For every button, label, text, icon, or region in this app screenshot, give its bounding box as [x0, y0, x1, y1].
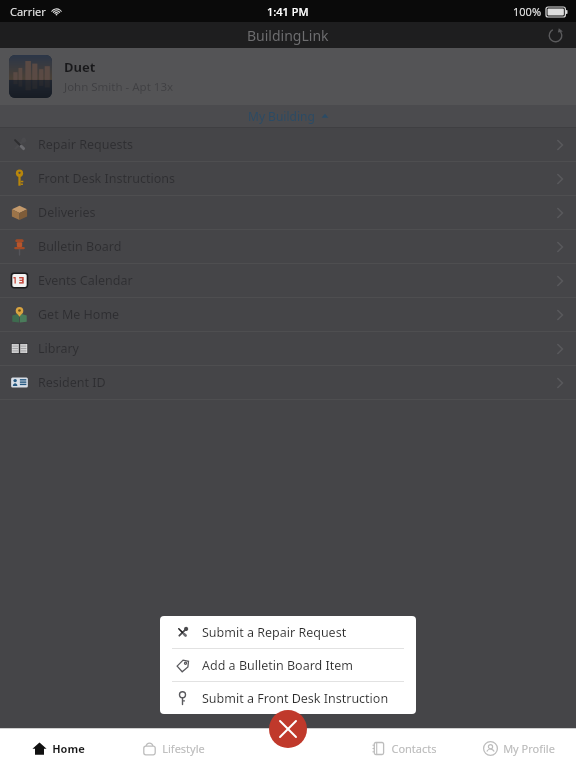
- button[interactable]: Lifestyle: [116, 729, 231, 768]
- staticText: Repair Requests: [38, 136, 554, 153]
- button[interactable]: My Profile: [461, 729, 576, 768]
- staticText: Lifestyle: [162, 741, 205, 756]
- button[interactable]: Duet: [0, 48, 576, 105]
- staticText: 1:41 PM: [267, 4, 309, 19]
- button[interactable]: Refresh: [544, 24, 566, 46]
- button[interactable]: Home: [0, 729, 116, 768]
- button[interactable]: My Building: [0, 105, 576, 127]
- staticText: 100%: [513, 4, 542, 19]
- button[interactable]: Close menu: [269, 710, 307, 748]
- staticText: Contacts: [391, 741, 437, 756]
- staticText: Front Desk Instructions: [38, 170, 554, 187]
- staticText: Carrier: [10, 4, 46, 19]
- button[interactable]: Contacts: [346, 729, 461, 768]
- button[interactable]: Library: [0, 332, 576, 365]
- staticText: John Smith - Apt 13x: [64, 79, 174, 95]
- button[interactable]: Submit a Repair Request: [160, 616, 416, 648]
- staticText: Home: [52, 741, 85, 756]
- staticText: Submit a Repair Request: [202, 624, 347, 641]
- button[interactable]: Resident ID: [0, 366, 576, 399]
- button[interactable]: Events Calendar: [0, 264, 576, 297]
- staticText: Bulletin Board: [38, 238, 554, 255]
- staticText: My Building: [248, 108, 315, 124]
- staticText: My Profile: [503, 741, 555, 756]
- button[interactable]: Deliveries: [0, 196, 576, 229]
- staticText: Duet: [64, 58, 96, 76]
- staticText: Submit a Front Desk Instruction: [202, 690, 389, 707]
- button[interactable]: Get Me Home: [0, 298, 576, 331]
- staticText: Add a Bulletin Board Item: [202, 657, 353, 674]
- staticText: Events Calendar: [38, 272, 554, 289]
- button[interactable]: Bulletin Board: [0, 230, 576, 263]
- button[interactable]: Submit a Front Desk Instruction: [160, 682, 416, 714]
- staticText: BuildingLink: [247, 26, 329, 45]
- button[interactable]: Front Desk Instructions: [0, 162, 576, 195]
- button[interactable]: Add a Bulletin Board Item: [160, 649, 416, 681]
